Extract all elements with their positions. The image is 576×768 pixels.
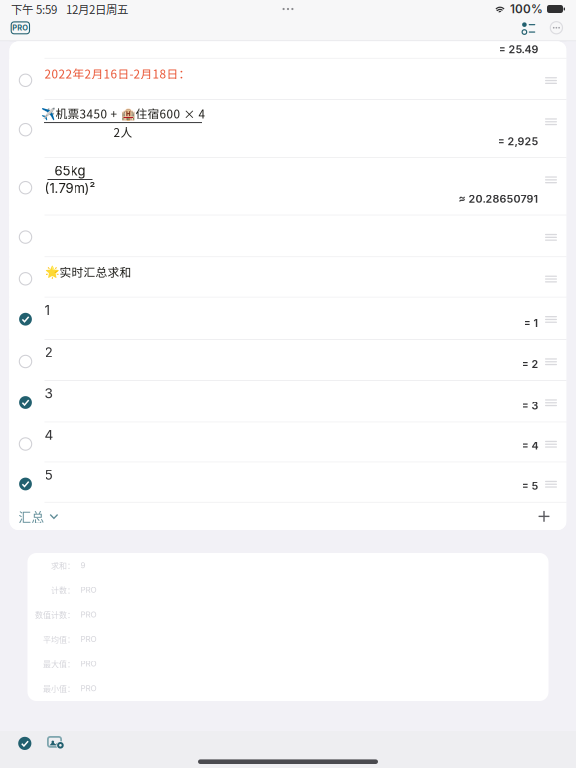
staticText: PRO: [80, 610, 96, 619]
staticText: PRO: [80, 634, 96, 644]
staticText: PRO: [80, 659, 96, 669]
staticText: = 2,925: [497, 135, 538, 148]
staticText: 4: [44, 426, 53, 443]
staticText: PRO: [80, 585, 96, 595]
staticText: 100%: [510, 2, 543, 16]
staticText: = 2: [521, 358, 538, 371]
staticText: 汇总: [18, 507, 44, 525]
button[interactable]: Reorder row: [545, 480, 557, 488]
staticText: 2人: [113, 124, 132, 140]
staticText: 最大值：: [43, 658, 75, 669]
button[interactable]: Select row: [9, 59, 41, 99]
staticText: 3: [44, 385, 52, 401]
button[interactable]: Select row: [9, 340, 41, 380]
button[interactable]: Selection mode: [522, 20, 535, 35]
button[interactable]: Select row: [9, 100, 41, 157]
button[interactable]: Reorder row: [545, 77, 557, 84]
button[interactable]: Select row: [9, 216, 41, 256]
button[interactable]: Reorder row: [545, 176, 557, 184]
staticText: PRO: [12, 23, 28, 32]
button[interactable]: Deselect row: [9, 462, 41, 502]
staticText: 1: [44, 302, 50, 318]
staticText: 9: [80, 560, 85, 570]
staticText: 5: [44, 466, 52, 483]
staticText: 2022年2月16日-2月18日：: [44, 65, 190, 82]
staticText: 下午 5:59: [11, 1, 57, 17]
button[interactable]: Add row: [537, 510, 566, 523]
button[interactable]: Reorder row: [545, 234, 557, 241]
staticText: = 3: [521, 399, 538, 412]
button[interactable]: Select row: [9, 257, 41, 297]
button[interactable]: Reorder row: [545, 358, 557, 365]
button[interactable]: Select row: [9, 158, 41, 215]
staticText: (1.79m)²: [44, 180, 95, 196]
button[interactable]: Deselect row: [9, 381, 41, 422]
staticText: = 25.49: [498, 43, 538, 56]
staticText: = 1: [523, 317, 538, 330]
button[interactable]: Confirm: [18, 737, 31, 750]
staticText: = 5: [521, 479, 538, 492]
button[interactable]: 汇总: [9, 507, 58, 525]
button[interactable]: Reorder row: [545, 275, 557, 283]
staticText: 数值计数：: [35, 609, 75, 620]
button[interactable]: PRO: [11, 22, 29, 34]
button[interactable]: Select row: [9, 422, 41, 462]
staticText: = 4: [521, 439, 538, 452]
button[interactable]: Deselect row: [9, 298, 41, 339]
button[interactable]: Reorder row: [545, 118, 557, 125]
staticText: 🌟实时汇总求和: [44, 263, 131, 280]
staticText: 12月2日周五: [57, 1, 128, 17]
staticText: 65kg: [54, 163, 85, 178]
staticText: 平均值：: [43, 633, 75, 645]
button[interactable]: Reorder row: [545, 399, 557, 406]
button[interactable]: Reorder row: [545, 316, 557, 323]
staticText: ✈️机票3450 + 🏨住宿600 × 4: [40, 105, 205, 122]
staticText: 2: [44, 344, 52, 360]
staticText: 最小值：: [43, 682, 75, 694]
staticText: 求和：: [51, 559, 75, 571]
button[interactable]: Reorder row: [545, 440, 557, 448]
button[interactable]: More options: [550, 22, 562, 37]
staticText: ≈ 20.28650791: [458, 192, 538, 205]
button[interactable]: Insert image: [48, 737, 64, 750]
staticText: PRO: [80, 683, 96, 693]
staticText: 计数：: [51, 584, 75, 596]
